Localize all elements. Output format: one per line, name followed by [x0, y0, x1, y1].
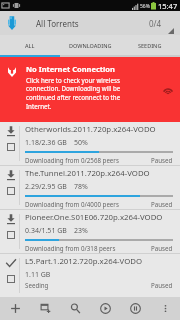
- staticText: SEEDING: [138, 42, 162, 49]
- staticText: All Torrents: [36, 18, 79, 29]
- button[interactable]: Select torrent: [7, 275, 15, 283]
- staticText: 56%: [140, 3, 150, 10]
- staticText: Downloading from 0/318 peers: [25, 244, 116, 252]
- staticText: 78%: [74, 182, 88, 192]
- staticText: Downloading from 0/2568 peers: [25, 156, 119, 164]
- other: Downloading: [6, 170, 16, 180]
- button[interactable]: Select torrent: [7, 187, 15, 195]
- button[interactable]: ALL: [0, 35, 60, 55]
- staticText: 15:47: [158, 1, 178, 11]
- staticText: 0/4: [149, 18, 162, 29]
- button[interactable]: DOWNLOADING: [60, 35, 120, 55]
- staticText: Pioneer.One.S01E06.720p.x264-VODO: [25, 212, 163, 223]
- staticText: 0.34/1.51 GB: [25, 226, 67, 236]
- other: Completed: [6, 258, 16, 268]
- staticText: Paused: [151, 200, 173, 208]
- button[interactable]: Add torrent file: [30, 297, 60, 320]
- other: No wifi: [162, 85, 174, 94]
- other: uTorrent: [8, 16, 16, 30]
- staticText: DOWNLOADING: [69, 42, 112, 49]
- button[interactable]: Completed: [0, 254, 180, 297]
- button[interactable]: Downloading: [0, 166, 180, 209]
- button[interactable]: Downloading: [0, 122, 180, 165]
- staticText: Paused: [151, 244, 173, 252]
- staticText: 2.29/2.95 GB: [25, 182, 67, 192]
- staticText: Paused: [151, 281, 173, 289]
- other: Downloading: [6, 214, 16, 224]
- button[interactable]: Select torrent: [7, 143, 15, 151]
- staticText: 50%: [74, 138, 88, 148]
- staticText: ALL: [25, 42, 35, 49]
- staticText: Paused: [151, 156, 173, 164]
- staticText: Seeding: [25, 281, 49, 289]
- staticText: The.Tunnel.2011.720p.x264-VODO: [25, 168, 150, 179]
- staticText: 23%: [74, 226, 88, 236]
- button[interactable]: uTorrent: [0, 11, 180, 35]
- staticText: L5.Part.1.2012.720p.x264-VODO: [25, 256, 143, 267]
- button[interactable]: More options: [150, 297, 180, 320]
- button[interactable]: SEEDING: [120, 35, 180, 55]
- staticText: Downloading from 0/4000 peers: [25, 200, 119, 208]
- other: Downloading: [6, 126, 16, 136]
- staticText: Otherworlds.2011.720p.x264-VODO: [25, 124, 156, 135]
- button[interactable]: Resume: [90, 297, 120, 320]
- button[interactable]: Pause: [120, 297, 150, 320]
- button[interactable]: Add torrent: [0, 297, 30, 320]
- button[interactable]: No Internet Connection: [0, 57, 180, 122]
- button[interactable]: Select torrent: [7, 231, 15, 239]
- staticText: 1.11 GB: [25, 270, 51, 280]
- staticText: 1.18/2.36 GB: [25, 138, 67, 148]
- button[interactable]: Downloading: [0, 210, 180, 253]
- staticText: Click here to check your wireless connec…: [26, 76, 123, 110]
- staticText: No Internet Connection: [26, 64, 115, 74]
- button[interactable]: Search: [60, 297, 90, 320]
